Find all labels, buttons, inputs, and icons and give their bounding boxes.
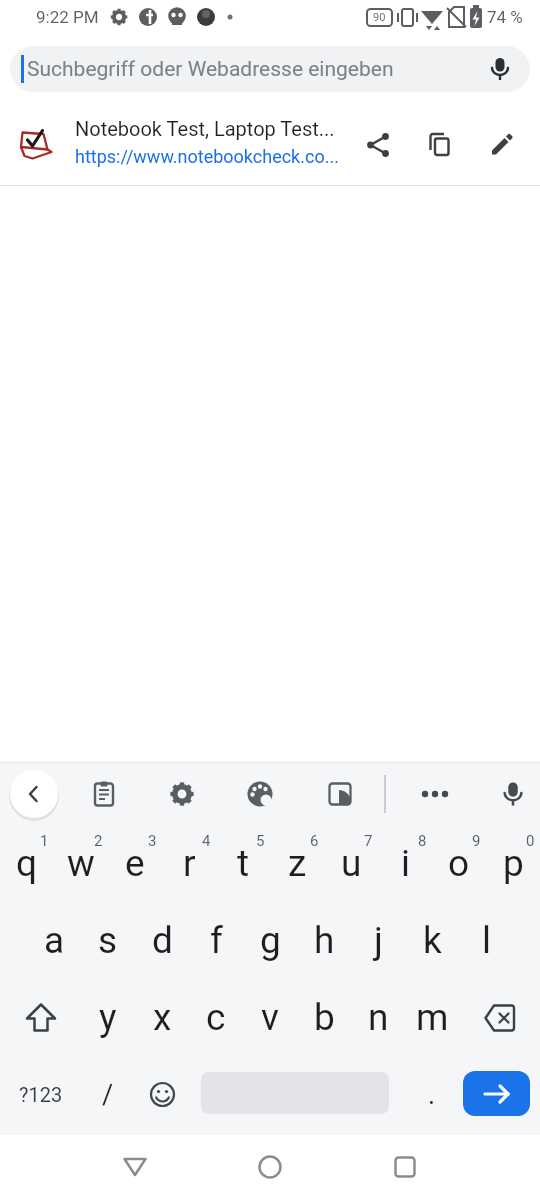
staticText: 4 xyxy=(202,832,211,850)
button[interactable]: u xyxy=(324,825,378,902)
button[interactable] xyxy=(478,120,528,170)
button[interactable]: b xyxy=(297,979,351,1056)
button[interactable] xyxy=(10,770,58,818)
button[interactable]: p xyxy=(486,825,540,902)
staticText: z xyxy=(288,842,307,885)
button[interactable] xyxy=(459,979,540,1056)
button[interactable] xyxy=(377,1139,433,1195)
button[interactable]: i xyxy=(378,825,432,902)
button[interactable]: ?123 xyxy=(0,1056,81,1133)
staticText: d xyxy=(152,919,173,962)
button[interactable] xyxy=(0,979,81,1056)
button[interactable]: n xyxy=(351,979,405,1056)
staticText: ?123 xyxy=(19,1083,63,1106)
button[interactable] xyxy=(157,769,207,819)
staticText: f xyxy=(210,919,223,962)
staticText: e xyxy=(125,842,145,885)
staticText: x xyxy=(153,996,172,1039)
staticText: 5 xyxy=(256,832,265,850)
staticText: y xyxy=(99,996,117,1039)
staticText: p xyxy=(503,842,524,885)
button[interactable]: y xyxy=(81,979,135,1056)
staticText: s xyxy=(98,919,118,962)
button[interactable]: l xyxy=(459,902,513,979)
button[interactable]: m xyxy=(405,979,459,1056)
button[interactable] xyxy=(353,120,403,170)
button[interactable] xyxy=(488,769,538,819)
staticText: v xyxy=(261,996,279,1039)
staticText: https://www.notebookcheck.co... xyxy=(75,146,339,167)
staticText: b xyxy=(314,996,335,1039)
staticText: 9:22 PM xyxy=(36,7,99,27)
button[interactable] xyxy=(463,1071,530,1116)
button[interactable] xyxy=(107,1139,163,1195)
button[interactable]: d xyxy=(135,902,189,979)
staticText: 90 xyxy=(373,11,386,24)
button[interactable] xyxy=(242,1139,298,1195)
staticText: m xyxy=(416,996,449,1039)
button[interactable]: q xyxy=(0,825,54,902)
button[interactable] xyxy=(410,769,460,819)
staticText: 7 xyxy=(364,832,373,850)
staticText: 6 xyxy=(310,832,319,850)
staticText: / xyxy=(102,1079,114,1111)
staticText: Suchbegriff oder Webadresse eingeben xyxy=(27,57,394,82)
button[interactable]: z xyxy=(270,825,324,902)
staticText: 9 xyxy=(472,832,481,850)
button[interactable]: c xyxy=(189,979,243,1056)
staticText: n xyxy=(368,996,389,1039)
staticText: 3 xyxy=(148,832,157,850)
button[interactable]: o xyxy=(432,825,486,902)
staticText: 8 xyxy=(418,832,427,850)
staticText: Notebook Test, Laptop Test... xyxy=(75,117,335,140)
button[interactable]: k xyxy=(405,902,459,979)
button[interactable]: f xyxy=(189,902,243,979)
button[interactable]: t xyxy=(216,825,270,902)
button[interactable]: r xyxy=(162,825,216,902)
button[interactable] xyxy=(135,1056,189,1133)
button[interactable]: h xyxy=(297,902,351,979)
staticText: a xyxy=(44,919,65,962)
staticText: c xyxy=(206,996,226,1039)
button[interactable]: . xyxy=(405,1056,459,1133)
button[interactable] xyxy=(315,769,365,819)
staticText: 0 xyxy=(526,832,535,850)
staticText: . xyxy=(428,1079,436,1111)
button[interactable]: w xyxy=(54,825,108,902)
button[interactable] xyxy=(235,769,285,819)
button[interactable]: x xyxy=(135,979,189,1056)
button[interactable]: Suchbegriff oder Webadresse eingeben xyxy=(10,46,530,92)
button[interactable]: g xyxy=(243,902,297,979)
staticText: 1 xyxy=(40,832,49,850)
button[interactable]: Notebook Test, Laptop Test... xyxy=(0,100,540,186)
staticText: r xyxy=(183,842,196,885)
staticText: q xyxy=(16,842,38,885)
staticText: o xyxy=(448,842,470,885)
staticText: k xyxy=(423,919,442,962)
button[interactable]: e xyxy=(108,825,162,902)
button[interactable]: a xyxy=(27,902,81,979)
staticText: g xyxy=(260,919,281,962)
button[interactable] xyxy=(79,769,129,819)
staticText: w xyxy=(67,842,95,885)
button[interactable]: j xyxy=(351,902,405,979)
staticText: t xyxy=(237,842,250,885)
staticText: j xyxy=(374,919,383,962)
button[interactable]: v xyxy=(243,979,297,1056)
staticText: h xyxy=(314,919,335,962)
button[interactable]: s xyxy=(81,902,135,979)
button[interactable] xyxy=(415,120,465,170)
button[interactable]: / xyxy=(81,1056,135,1133)
staticText: l xyxy=(482,919,491,962)
staticText: u xyxy=(341,842,362,885)
staticText: 74 % xyxy=(487,7,523,27)
staticText: 2 xyxy=(94,832,103,850)
staticText: i xyxy=(401,842,410,885)
